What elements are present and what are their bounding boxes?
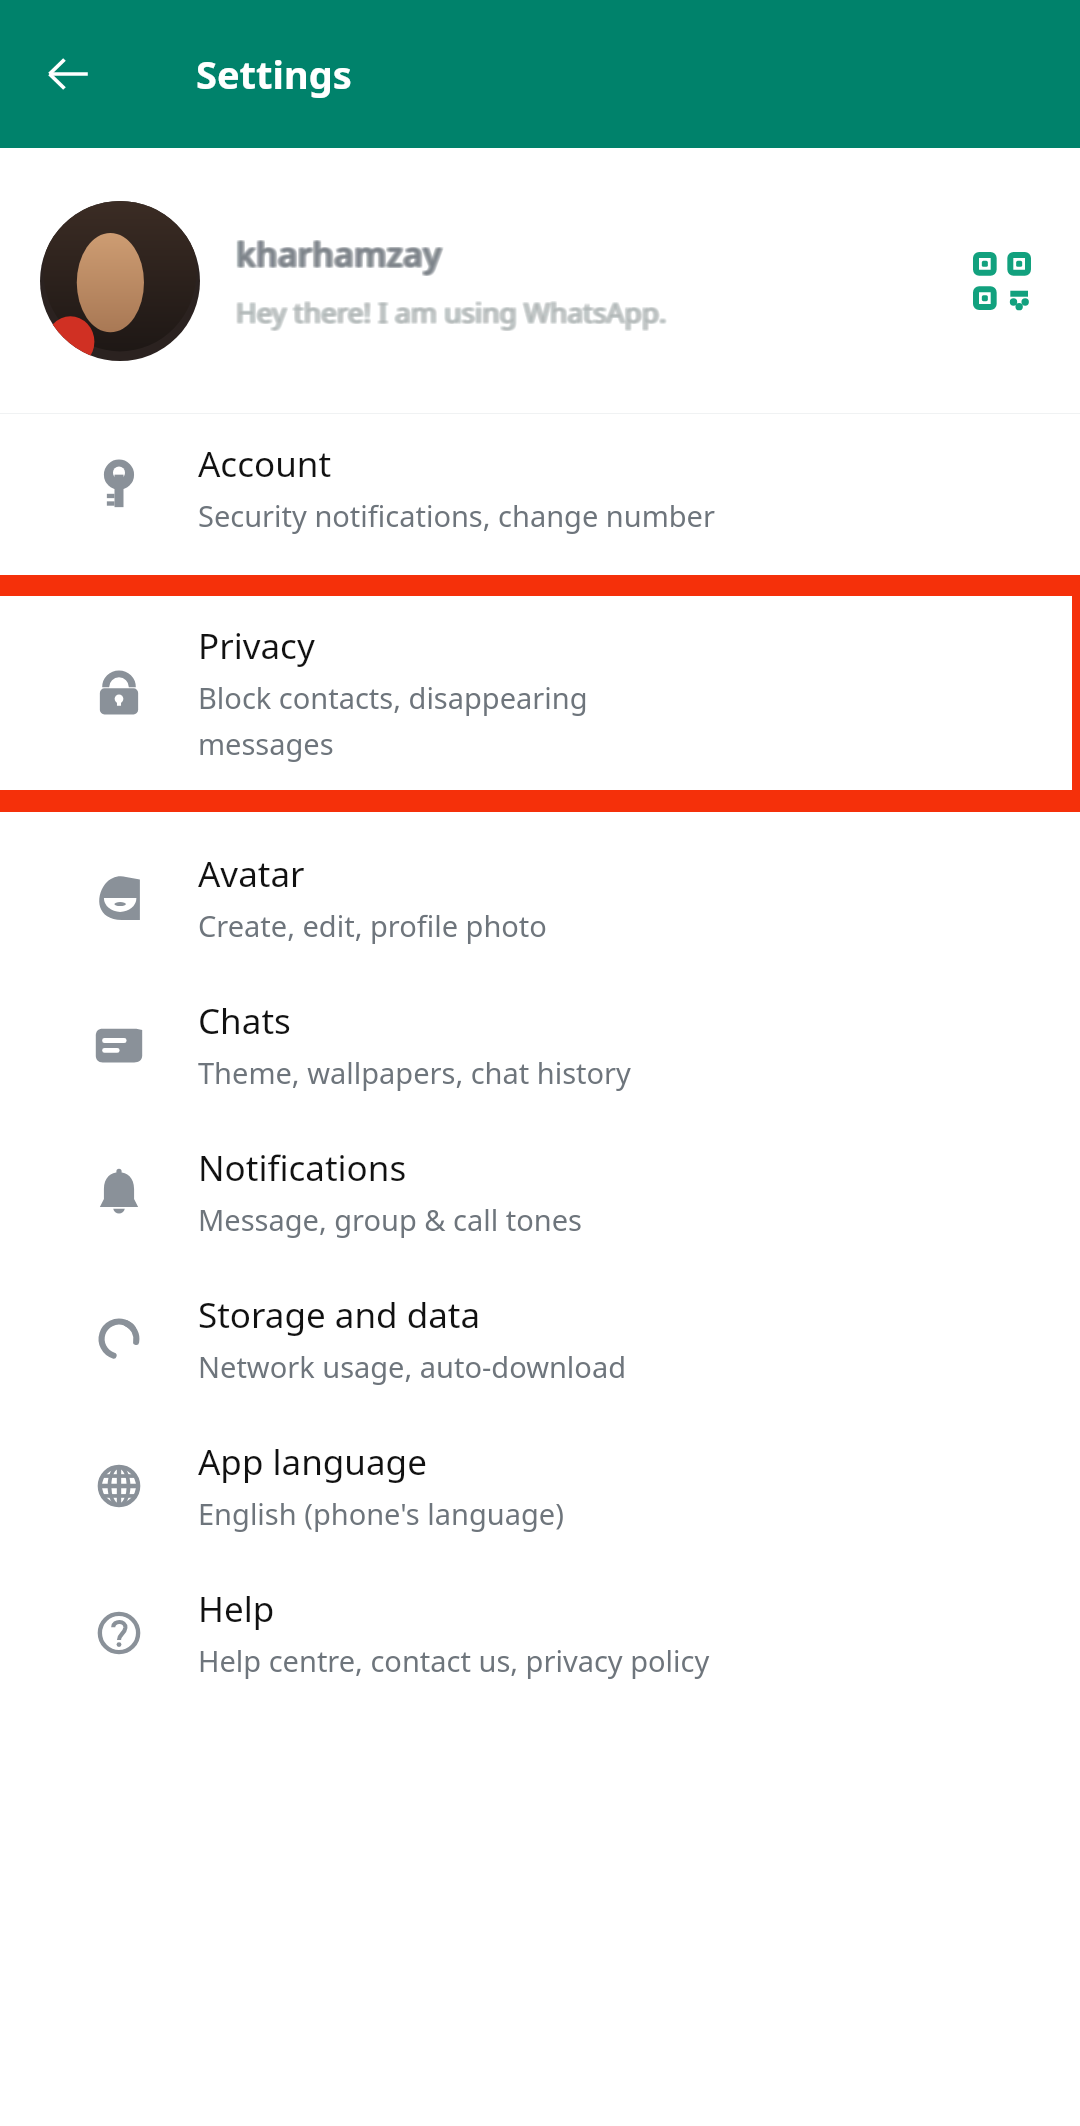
staticText: kharhamzay bbox=[234, 230, 440, 276]
staticText: kharhamzay bbox=[237, 230, 443, 276]
button[interactable]: Storage and data bbox=[0, 1265, 1080, 1412]
staticText: kharhamzay bbox=[235, 230, 441, 276]
staticText: Hey there! I am using WhatsApp. bbox=[237, 292, 668, 330]
button[interactable]: Back bbox=[32, 38, 104, 110]
staticText: Network usage, auto-download bbox=[198, 1347, 626, 1386]
button[interactable]: kharhamzay bbox=[0, 148, 1080, 413]
staticText: English (phone's language) bbox=[198, 1494, 564, 1533]
button[interactable]: App language bbox=[0, 1412, 1080, 1559]
staticText: kharhamzay bbox=[237, 232, 443, 278]
staticText: Account bbox=[198, 440, 332, 488]
staticText: Help bbox=[198, 1585, 275, 1633]
staticText: Chats bbox=[198, 997, 291, 1045]
staticText: Create, edit, profile photo bbox=[198, 906, 547, 945]
staticText: Hey there! I am using WhatsApp. bbox=[236, 294, 667, 332]
staticText: kharhamzay bbox=[234, 231, 440, 277]
staticText: Help centre, contact us, privacy policy bbox=[198, 1641, 710, 1680]
staticText: Settings bbox=[196, 48, 352, 100]
staticText: Hey there! I am using WhatsApp. bbox=[235, 292, 666, 330]
staticText: Hey there! I am using WhatsApp. bbox=[235, 294, 666, 332]
staticText: Notifications bbox=[198, 1144, 407, 1192]
staticText: Hey there! I am using WhatsApp. bbox=[238, 292, 669, 330]
staticText: Hey there! I am using WhatsApp. bbox=[238, 294, 669, 332]
staticText: Hey there! I am using WhatsApp. bbox=[234, 292, 665, 330]
staticText: kharhamzay bbox=[236, 232, 442, 278]
staticText: Hey there! I am using WhatsApp. bbox=[236, 292, 667, 330]
staticText: kharhamzay bbox=[236, 230, 442, 276]
button[interactable]: Help bbox=[0, 1559, 1080, 1706]
staticText: Security notifications, change number bbox=[198, 496, 715, 535]
staticText: Message, group & call tones bbox=[198, 1200, 582, 1239]
staticText: kharhamzay bbox=[237, 231, 443, 277]
button[interactable]: QR code bbox=[964, 243, 1040, 319]
staticText: kharhamzay bbox=[238, 232, 444, 278]
button[interactable]: Chats bbox=[0, 971, 1080, 1118]
staticText: Hey there! I am using WhatsApp. bbox=[234, 293, 665, 331]
staticText: Privacy bbox=[198, 622, 315, 670]
staticText: Hey there! I am using WhatsApp. bbox=[238, 293, 669, 331]
staticText: kharhamzay bbox=[238, 230, 444, 276]
staticText: Hey there! I am using WhatsApp. bbox=[237, 294, 668, 332]
staticText: kharhamzay bbox=[235, 231, 441, 277]
staticText: kharhamzay bbox=[234, 232, 440, 278]
staticText: kharhamzay bbox=[236, 231, 442, 277]
staticText: Theme, wallpapers, chat history bbox=[198, 1053, 631, 1092]
staticText: Block contacts, disappearing messages bbox=[198, 678, 588, 764]
staticText: Hey there! I am using WhatsApp. bbox=[235, 293, 666, 331]
button[interactable]: Privacy bbox=[0, 596, 1072, 790]
staticText: kharhamzay bbox=[238, 231, 444, 277]
staticText: kharhamzay bbox=[235, 232, 441, 278]
staticText: Hey there! I am using WhatsApp. bbox=[237, 293, 668, 331]
button[interactable]: Notifications bbox=[0, 1118, 1080, 1265]
staticText: Avatar bbox=[198, 850, 305, 898]
staticText: App language bbox=[198, 1438, 427, 1486]
staticText: Hey there! I am using WhatsApp. bbox=[236, 293, 667, 331]
button[interactable]: Account bbox=[0, 414, 1080, 561]
button[interactable]: Avatar bbox=[0, 824, 1080, 971]
staticText: Hey there! I am using WhatsApp. bbox=[234, 294, 665, 332]
staticText: Storage and data bbox=[198, 1291, 481, 1339]
